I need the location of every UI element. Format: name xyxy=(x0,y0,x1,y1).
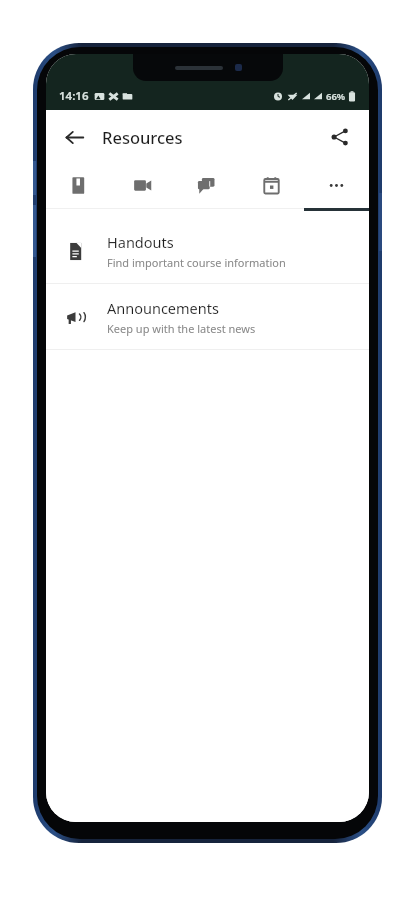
staticText: Announcements xyxy=(107,298,219,318)
button[interactable]: Book tab xyxy=(46,163,110,208)
staticText: Find important course information xyxy=(107,255,286,270)
staticText: Keep up with the latest news xyxy=(107,321,256,336)
staticText: Handouts xyxy=(107,232,174,252)
button[interactable]: Announcements xyxy=(46,284,369,349)
staticText: Resources xyxy=(102,126,183,148)
button[interactable]: Videos tab xyxy=(110,163,174,208)
button[interactable]: Handouts xyxy=(46,218,369,283)
button[interactable]: Back xyxy=(52,115,96,159)
button[interactable]: Discussions tab xyxy=(174,163,239,208)
button[interactable]: Calendar tab xyxy=(239,163,304,208)
staticText: 66% xyxy=(326,90,346,103)
button[interactable]: Share xyxy=(319,116,361,158)
staticText: 14:16 xyxy=(59,88,89,104)
button[interactable]: More tab xyxy=(304,163,369,208)
